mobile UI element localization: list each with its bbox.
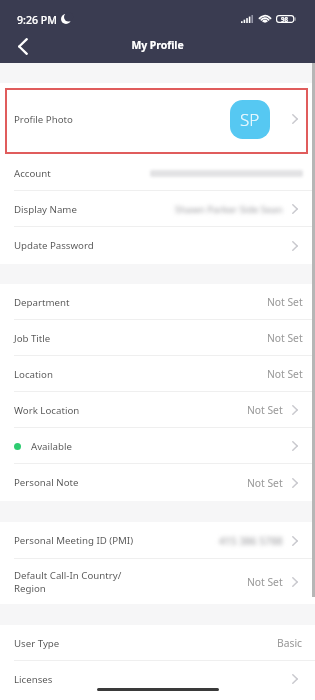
button[interactable]: Licenses (0, 661, 315, 697)
staticText: Department (14, 296, 70, 309)
staticText: Basic (277, 636, 303, 650)
button[interactable]: Personal Meeting ID (PMI) (0, 522, 315, 559)
staticText: SP (240, 108, 260, 131)
staticText: 415 386 5788 (219, 534, 283, 548)
button[interactable]: Display Name (0, 191, 315, 227)
staticText: Profile Photo (14, 113, 73, 126)
button[interactable]: Location (0, 356, 315, 392)
staticText: Not Set (267, 367, 303, 381)
staticText: Not Set (247, 403, 283, 417)
staticText: Work Location (14, 404, 80, 417)
staticText: Default Call-In Country/ Region (14, 569, 122, 595)
button[interactable]: Available (0, 428, 315, 464)
button[interactable]: User Type (0, 625, 315, 661)
button[interactable]: Account (0, 155, 315, 191)
button[interactable]: Job Title (0, 320, 315, 356)
staticText: Not Set (247, 575, 283, 589)
button[interactable]: Default Call-In Country/ Region (0, 559, 315, 604)
button[interactable]: Personal Note (0, 464, 315, 501)
staticText: Licenses (14, 673, 53, 686)
button[interactable]: Work Location (0, 392, 315, 428)
button[interactable]: Profile Photo (0, 83, 315, 155)
button[interactable]: Update Password (0, 227, 315, 264)
staticText: Not Set (267, 331, 303, 345)
button[interactable]: Back (6, 30, 39, 62)
staticText: Available (31, 440, 72, 453)
staticText: User Type (14, 637, 60, 650)
staticText: Account (14, 167, 51, 180)
staticText: Shawn Parker Side Sean (175, 203, 283, 216)
staticText: Location (14, 368, 53, 381)
staticText: Personal Note (14, 476, 79, 489)
staticText: Not Set (247, 476, 283, 490)
staticText: Display Name (14, 203, 77, 216)
staticText: My Profile (131, 38, 184, 52)
button[interactable]: Department (0, 284, 315, 320)
staticText: 98 (281, 15, 289, 23)
staticText: Not Set (267, 295, 303, 309)
staticText: Job Title (14, 332, 51, 345)
staticText: Update Password (14, 239, 94, 252)
staticText: Personal Meeting ID (PMI) (14, 534, 134, 547)
staticText: 9:26 PM (17, 13, 58, 24)
